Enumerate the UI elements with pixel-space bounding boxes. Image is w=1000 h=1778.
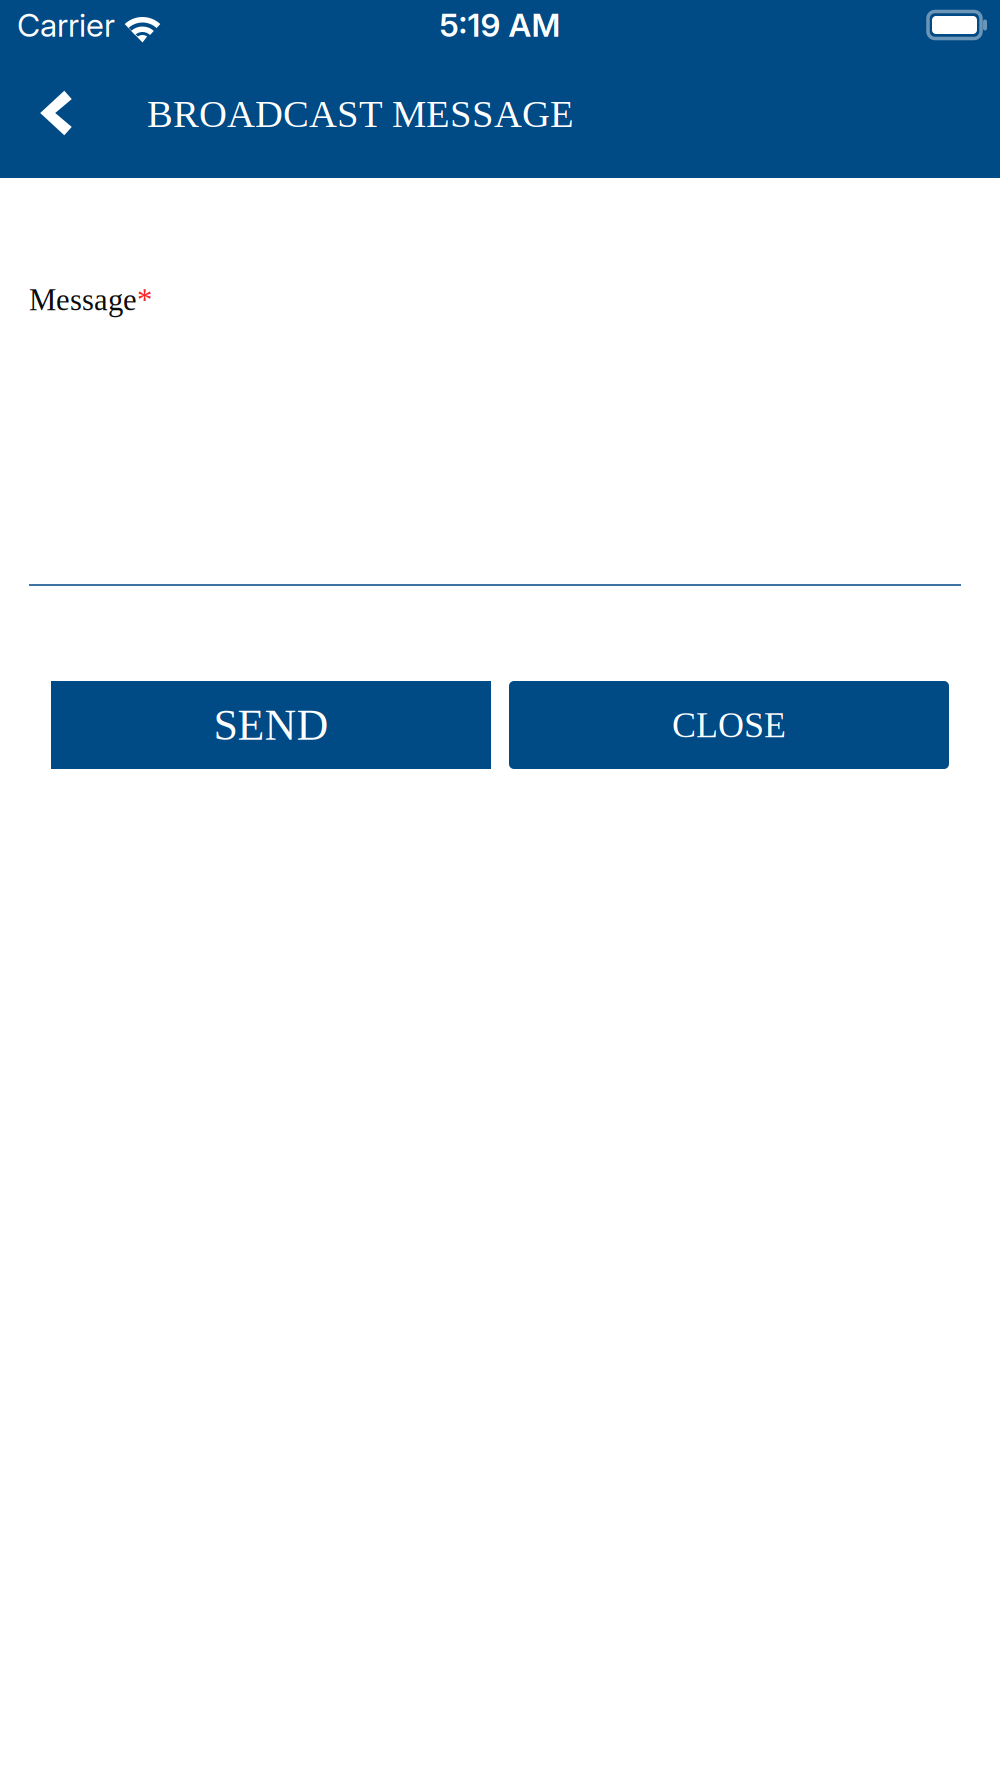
staticText: * — [137, 283, 152, 317]
button[interactable]: Message text field — [0, 316, 1000, 586]
button[interactable]: SEND — [51, 681, 491, 769]
button[interactable]: Back — [0, 50, 89, 178]
staticText: CLOSE — [672, 705, 786, 745]
button[interactable]: CLOSE — [509, 681, 949, 769]
staticText: BROADCAST MESSAGE — [147, 93, 574, 135]
staticText: Message — [29, 283, 137, 317]
staticText: Carrier — [17, 6, 115, 44]
staticText: 5:19 AM — [439, 6, 560, 44]
staticText: SEND — [213, 701, 328, 749]
